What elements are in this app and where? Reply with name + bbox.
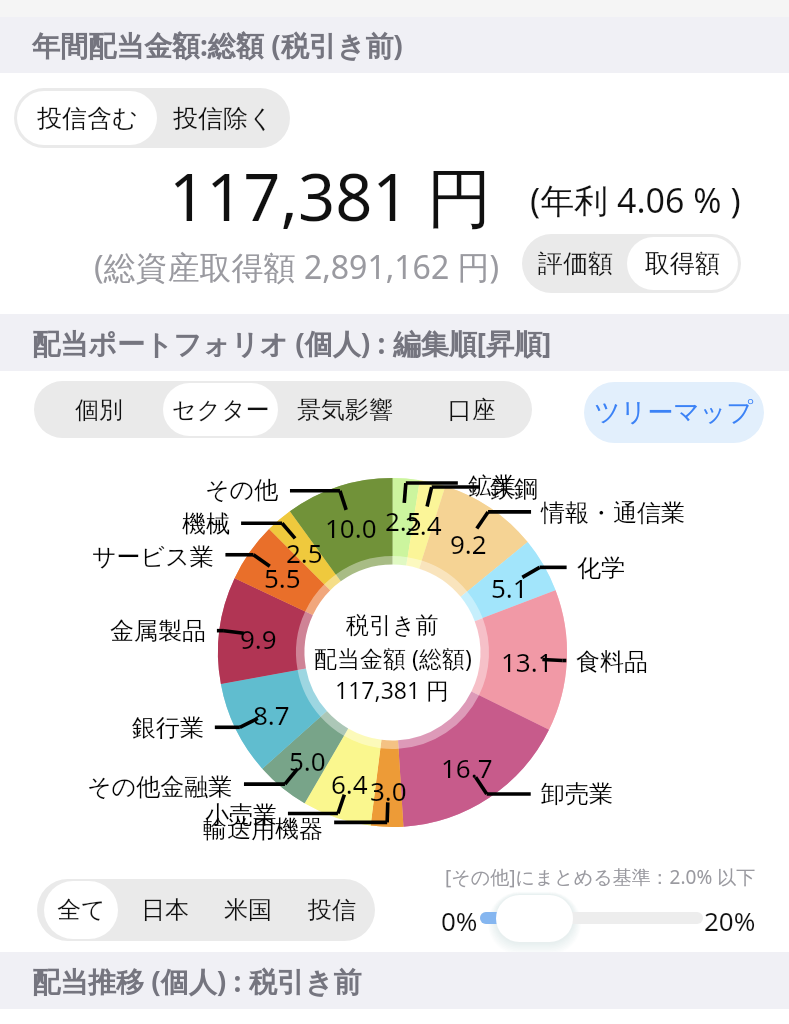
staticText: 投信含む xyxy=(37,103,138,134)
staticText: 個別 xyxy=(75,395,123,425)
staticText: 小売業 xyxy=(205,800,277,830)
staticText: 鉄鋼 xyxy=(490,474,538,504)
staticText: 投信除く xyxy=(173,103,274,134)
staticText: 5.5 xyxy=(264,560,301,595)
button[interactable]: 評価額 xyxy=(522,234,629,293)
staticText: 税引き前 xyxy=(346,611,439,640)
button[interactable]: 米国 xyxy=(206,879,289,941)
staticText: 景気影響 xyxy=(297,395,393,425)
staticText: 16.7 xyxy=(441,750,493,785)
staticText: 9.9 xyxy=(240,621,277,656)
staticText: 配当金額 (総額) xyxy=(314,642,472,673)
staticText: 8.7 xyxy=(253,697,290,732)
staticText: 2.5 xyxy=(286,535,323,570)
staticText: 117,381 円 xyxy=(335,674,450,705)
staticText: 5.1 xyxy=(491,570,528,605)
staticText: (総資産取得額 2,891,162 円) xyxy=(94,245,500,289)
staticText: 化学 xyxy=(577,553,625,583)
button[interactable]: 投信除く xyxy=(157,88,290,148)
staticText: 年間配当金額:総額 (税引き前) xyxy=(32,26,403,64)
staticText: その他金融業 xyxy=(87,772,233,802)
staticText: 20% xyxy=(704,903,756,938)
button[interactable]: 口座 xyxy=(412,381,532,438)
button[interactable]: 投信 xyxy=(289,879,375,941)
staticText: 機械 xyxy=(182,509,230,539)
staticText: 2.4 xyxy=(405,507,442,542)
staticText: 2.5 xyxy=(385,503,422,538)
staticText: 卸売業 xyxy=(541,779,613,809)
staticText: 投信 xyxy=(308,895,356,925)
staticText: 5.0 xyxy=(289,743,326,778)
staticText: セクター xyxy=(172,395,270,425)
button[interactable]: Threshold slider handle xyxy=(496,895,573,942)
staticText: 米国 xyxy=(224,895,272,925)
staticText: 評価額 xyxy=(538,248,613,279)
staticText: 食料品 xyxy=(576,647,648,677)
staticText: 10.0 xyxy=(325,510,377,545)
staticText: 日本 xyxy=(141,895,189,925)
button[interactable]: 取得額 xyxy=(627,237,738,290)
staticText: 取得額 xyxy=(645,248,720,279)
button[interactable]: 全て xyxy=(44,881,118,939)
staticText: 情報・通信業 xyxy=(541,498,685,528)
staticText: 配当ポートフォリオ (個人) : 編集順[昇順] xyxy=(32,324,552,362)
staticText: その他 xyxy=(205,475,279,505)
staticText: 配当推移 (個人) : 税引き前 xyxy=(32,962,362,1000)
button[interactable]: 個別 xyxy=(34,381,163,438)
staticText: 0% xyxy=(441,903,478,938)
staticText: (年利 4.06 % ) xyxy=(530,177,741,223)
button[interactable]: 景気影響 xyxy=(278,381,412,438)
button[interactable]: 投信含む xyxy=(17,91,157,145)
staticText: 117,381 円 xyxy=(169,152,492,241)
staticText: 13.1 xyxy=(501,644,553,679)
staticText: サービス業 xyxy=(92,542,214,572)
staticText: 6.4 xyxy=(331,766,368,801)
staticText: 輸送用機器 xyxy=(203,814,323,844)
staticText: 9.2 xyxy=(450,526,487,561)
button[interactable]: 日本 xyxy=(123,879,206,941)
staticText: 口座 xyxy=(448,395,496,425)
staticText: 全て xyxy=(57,895,106,925)
staticText: 銀行業 xyxy=(132,713,204,743)
staticText: 金属製品 xyxy=(110,616,206,646)
staticText: 3.0 xyxy=(370,773,407,808)
staticText: ツリーマップ xyxy=(594,396,754,429)
button[interactable]: セクター xyxy=(163,383,278,436)
button[interactable]: ツリーマップ xyxy=(584,382,764,443)
staticText: 鉱業 xyxy=(468,471,516,501)
staticText: [その他]にまとめる基準：2.0% 以下 xyxy=(445,864,756,890)
